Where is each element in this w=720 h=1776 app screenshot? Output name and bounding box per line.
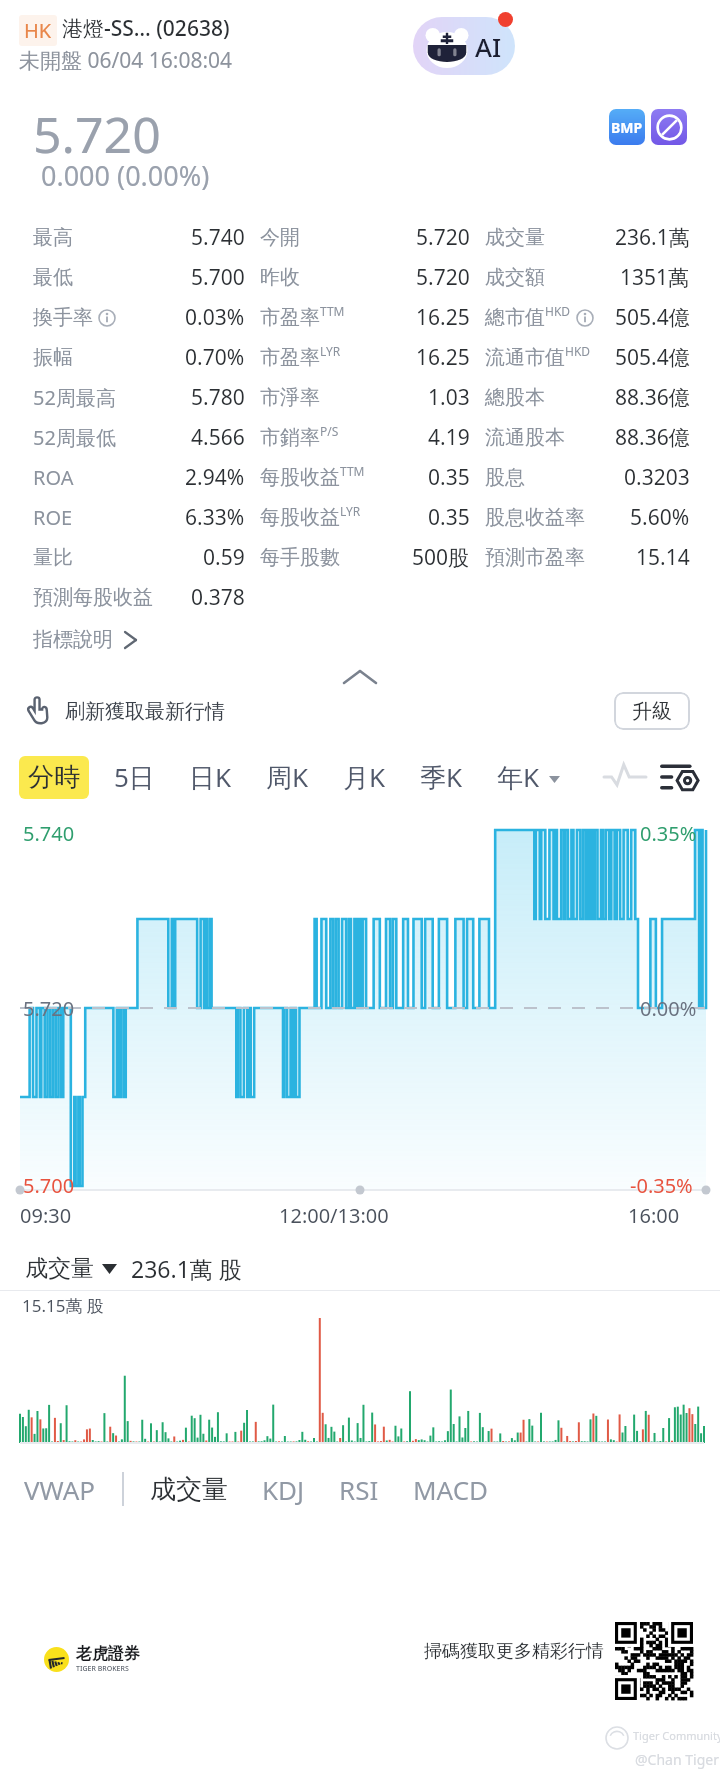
staticText: 市盈率	[260, 345, 320, 370]
staticText: 0.03%	[185, 303, 245, 332]
button[interactable]: 5日	[105, 754, 164, 800]
staticText: 換手率	[33, 305, 93, 330]
staticText: 日K	[189, 759, 232, 795]
staticText: 0.378	[191, 583, 245, 612]
staticText: Tiger Community	[633, 1728, 720, 1743]
staticText: 0.59	[203, 543, 245, 572]
staticText: 5日	[114, 759, 155, 795]
staticText: 市銷率	[260, 425, 320, 450]
button[interactable]: 分時	[19, 756, 89, 799]
staticText: 周K	[266, 759, 309, 795]
staticText: VWAP	[24, 1472, 96, 1507]
staticText: 5.740	[191, 223, 245, 252]
staticText: 流通市值	[485, 345, 565, 370]
staticText: TTM	[320, 303, 345, 319]
staticText: 15.15萬 股	[22, 1294, 104, 1317]
staticText: 5.60%	[630, 503, 690, 532]
button[interactable]: 年K	[488, 754, 549, 800]
staticText: ROA	[33, 464, 74, 491]
staticText: 16.25	[416, 303, 470, 332]
staticText: 5.720	[416, 263, 470, 292]
button[interactable]: Chart settings	[652, 749, 708, 805]
staticText: 指標說明	[33, 627, 113, 652]
staticText: TTM	[340, 463, 365, 479]
staticText: 4.566	[191, 423, 245, 452]
button[interactable]: AI assistant	[413, 17, 515, 75]
button[interactable]: RSI	[337, 1460, 381, 1519]
staticText: LYR	[340, 503, 361, 519]
staticText: 0.70%	[185, 343, 245, 372]
staticText: HKD	[545, 303, 571, 319]
staticText: 刷新獲取最新行情	[65, 699, 225, 724]
button[interactable]: More info about 總市值	[576, 309, 594, 327]
staticText: 5.720	[416, 223, 470, 252]
staticText: 預測每股收益	[33, 585, 153, 610]
staticText: 成交量	[25, 1254, 94, 1283]
button[interactable]: 成交量	[148, 1461, 230, 1518]
staticText: RSI	[339, 1472, 379, 1507]
button[interactable]: More info about 換手率	[98, 309, 116, 327]
staticText: 每手股數	[260, 545, 340, 570]
button[interactable]: KDJ	[260, 1460, 307, 1519]
staticText: 預測市盈率	[485, 545, 585, 570]
staticText: 505.4億	[615, 343, 690, 372]
staticText: 16:00	[628, 1202, 680, 1229]
staticText: 未開盤 06/04 16:08:04	[19, 46, 233, 75]
staticText: 成交量	[150, 1473, 228, 1506]
button[interactable]: Indicators	[600, 752, 650, 802]
button[interactable]: Collapse	[0, 662, 720, 700]
staticText: 52周最低	[33, 424, 116, 451]
staticText: 總股本	[485, 385, 545, 410]
staticText: 236.1萬 股	[131, 1253, 242, 1284]
button[interactable]: 刷新獲取最新行情	[26, 696, 225, 726]
staticText: HK	[24, 17, 52, 44]
staticText: 5.780	[191, 383, 245, 412]
staticText: HKD	[565, 343, 591, 359]
button[interactable]: 季K	[411, 754, 472, 800]
staticText: 5.700	[191, 263, 245, 292]
staticText: @Chan Tiger	[635, 1750, 719, 1769]
button[interactable]: BMP	[609, 109, 645, 145]
staticText: 成交額	[485, 265, 545, 290]
staticText: 月K	[343, 759, 386, 795]
staticText: 今開	[260, 225, 300, 250]
staticText: 1351萬	[620, 263, 690, 292]
staticText: 12:00/13:00	[279, 1202, 389, 1229]
staticText: 股息收益率	[485, 505, 585, 530]
staticText: 0.35	[428, 463, 470, 492]
staticText: 年K	[497, 759, 540, 795]
button[interactable]: 周K	[257, 754, 318, 800]
staticText: 4.19	[428, 423, 470, 452]
button[interactable]: 成交量	[25, 1254, 117, 1283]
button[interactable]: 指標說明	[33, 627, 137, 652]
staticText: 季K	[420, 759, 463, 795]
staticText: 505.4億	[615, 303, 690, 332]
staticText: -0.35%	[630, 1172, 693, 1199]
staticText: 港燈-SS… (02638)	[62, 14, 230, 43]
staticText: KDJ	[262, 1472, 305, 1507]
button[interactable]: VWAP	[22, 1460, 98, 1519]
staticText: 15.14	[636, 543, 690, 572]
staticText: 09:30	[20, 1202, 72, 1229]
button[interactable]: 升級	[614, 692, 690, 730]
staticText: LYR	[320, 343, 341, 359]
staticText: 昨收	[260, 265, 300, 290]
staticText: 0.00%	[640, 995, 697, 1022]
button[interactable]: No short sell	[651, 109, 687, 145]
staticText: 最高	[33, 225, 73, 250]
staticText: 0.3203	[624, 463, 690, 492]
staticText: ROE	[33, 504, 73, 531]
button[interactable]: 月K	[334, 754, 395, 800]
staticText: 0.35	[428, 503, 470, 532]
button[interactable]: MACD	[411, 1460, 491, 1519]
staticText: 分時	[28, 761, 80, 794]
staticText: 52周最高	[33, 384, 116, 411]
staticText: 1.03	[428, 383, 470, 412]
staticText: 236.1萬	[615, 223, 690, 252]
staticText: 88.36億	[615, 383, 690, 412]
staticText: 流通股本	[485, 425, 565, 450]
staticText: BMP	[611, 118, 643, 137]
staticText: 成交量	[485, 225, 545, 250]
staticText: 市盈率	[260, 305, 320, 330]
button[interactable]: 日K	[180, 754, 241, 800]
